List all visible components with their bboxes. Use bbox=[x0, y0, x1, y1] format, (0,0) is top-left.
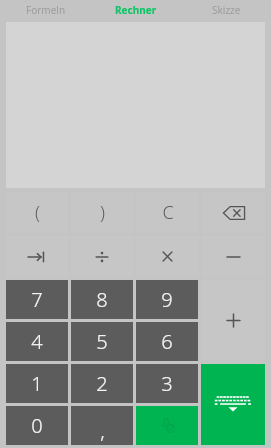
staticText: C bbox=[162, 200, 174, 225]
button[interactable]: 5 bbox=[71, 322, 133, 361]
button[interactable]: 3 bbox=[136, 364, 198, 403]
button[interactable]: 8 bbox=[71, 280, 133, 319]
staticText: 0 bbox=[31, 412, 43, 439]
staticText: ) bbox=[100, 200, 105, 225]
staticText: 2 bbox=[96, 370, 108, 397]
staticText: 5 bbox=[96, 328, 108, 355]
button[interactable]: Formeln bbox=[0, 0, 91, 20]
button[interactable]: 1 bbox=[6, 364, 68, 403]
button[interactable]: C bbox=[136, 192, 199, 233]
staticText: ( bbox=[35, 200, 40, 225]
button[interactable]: Backspace bbox=[202, 192, 265, 233]
button[interactable]: Minus bbox=[202, 236, 265, 277]
button[interactable]: 0 bbox=[6, 406, 68, 445]
button[interactable]: Plus bbox=[201, 280, 265, 361]
button[interactable]: 6 bbox=[136, 322, 198, 361]
staticText: 6 bbox=[161, 328, 173, 355]
staticText: Skizze bbox=[212, 3, 241, 17]
staticText: Rechner bbox=[115, 3, 157, 17]
button[interactable]: 2 bbox=[71, 364, 133, 403]
staticText: Formeln bbox=[26, 3, 66, 17]
button[interactable]: Divide bbox=[71, 236, 133, 277]
staticText: 8 bbox=[96, 286, 108, 313]
button[interactable]: Skizze bbox=[181, 0, 271, 20]
button[interactable]: Rechner bbox=[91, 0, 181, 20]
button[interactable]: ( bbox=[6, 192, 68, 233]
button[interactable]: Tab bbox=[6, 236, 68, 277]
button[interactable]: 7 bbox=[6, 280, 68, 319]
staticText: 1 bbox=[31, 370, 43, 397]
button[interactable]: 9 bbox=[136, 280, 198, 319]
button[interactable]: Hide keyboard bbox=[201, 364, 265, 445]
staticText: 9 bbox=[161, 286, 173, 313]
button[interactable]: , bbox=[71, 406, 133, 445]
button[interactable]: ) bbox=[71, 192, 133, 233]
staticText: , bbox=[100, 417, 105, 444]
staticText: 7 bbox=[31, 286, 43, 313]
button[interactable]: 4 bbox=[6, 322, 68, 361]
staticText: 4 bbox=[31, 328, 43, 355]
button[interactable]: Multiply bbox=[136, 236, 199, 277]
staticText: 3 bbox=[161, 370, 173, 397]
